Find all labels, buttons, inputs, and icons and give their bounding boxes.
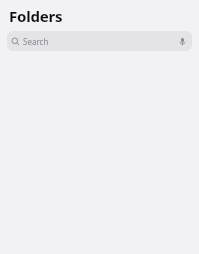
button[interactable]: Voice search bbox=[177, 36, 187, 46]
staticText: Folders bbox=[9, 6, 63, 26]
button[interactable]: Search bbox=[7, 31, 192, 51]
staticText: Search bbox=[23, 36, 49, 47]
